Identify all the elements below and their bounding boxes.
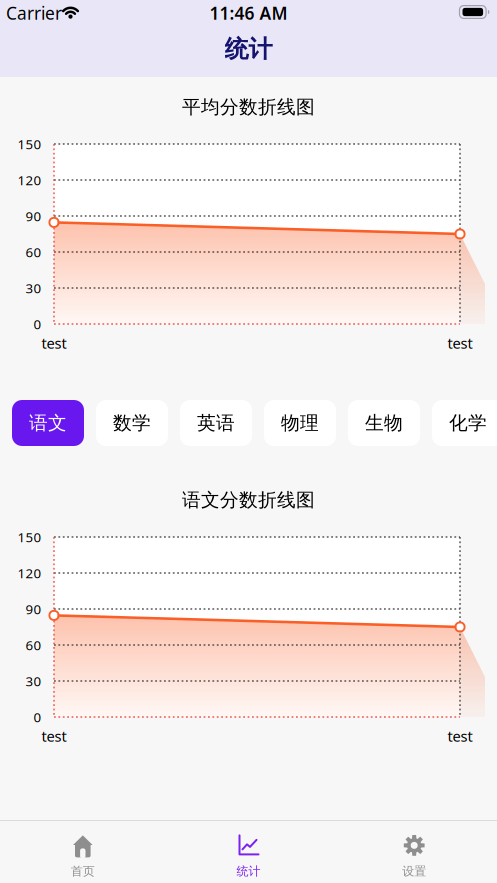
staticText: 150 xyxy=(17,135,41,153)
button[interactable]: 数学 xyxy=(96,400,168,446)
button[interactable]: 设置 xyxy=(334,826,494,883)
staticText: 首页 xyxy=(71,864,95,879)
staticText: 语文分数折线图 xyxy=(182,488,315,511)
staticText: 30 xyxy=(25,279,41,297)
staticText: Carrier xyxy=(6,1,62,24)
staticText: 英语 xyxy=(197,411,235,434)
staticText: 120 xyxy=(17,564,41,582)
staticText: 0 xyxy=(33,708,41,726)
staticText: 90 xyxy=(25,207,41,225)
button[interactable]: 化学 xyxy=(432,400,497,446)
staticText: 化学 xyxy=(449,411,487,434)
staticText: test xyxy=(447,333,472,353)
staticText: 数学 xyxy=(113,411,151,434)
staticText: 60 xyxy=(25,243,41,261)
staticText: test xyxy=(447,726,472,746)
staticText: 150 xyxy=(17,528,41,546)
staticText: 90 xyxy=(25,600,41,618)
staticText: 平均分数折线图 xyxy=(182,95,315,118)
staticText: 设置 xyxy=(402,864,426,879)
staticText: 统计 xyxy=(236,864,260,879)
staticText: 11:46 AM xyxy=(209,1,287,24)
staticText: 120 xyxy=(17,171,41,189)
button[interactable]: 物理 xyxy=(264,400,336,446)
staticText: 30 xyxy=(25,672,41,690)
button[interactable]: 英语 xyxy=(180,400,252,446)
staticText: 生物 xyxy=(365,411,403,434)
staticText: 60 xyxy=(25,636,41,654)
button[interactable]: 首页 xyxy=(3,826,163,883)
staticText: 物理 xyxy=(281,411,319,434)
staticText: test xyxy=(41,333,66,353)
button[interactable]: 统计 xyxy=(168,826,328,883)
button[interactable]: 语文 xyxy=(12,400,84,446)
staticText: 统计 xyxy=(224,34,272,64)
staticText: 语文 xyxy=(29,411,67,434)
staticText: 0 xyxy=(33,315,41,333)
staticText: test xyxy=(41,726,66,746)
button[interactable]: 生物 xyxy=(348,400,420,446)
